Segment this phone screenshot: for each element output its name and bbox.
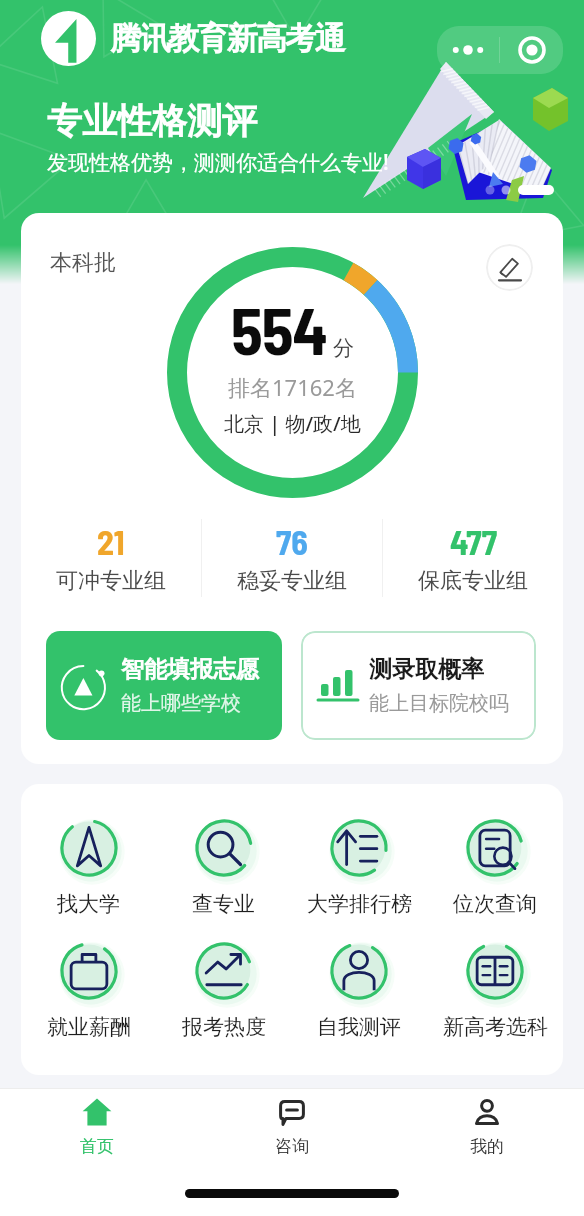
button[interactable]: 查专业 [156,815,291,917]
button[interactable]: 咨询 [194,1089,389,1175]
staticText: 腾讯教育新高考通 [110,19,344,58]
staticText: 测录取概率 [369,655,484,684]
staticText: 稳妥专业组 [237,567,347,595]
staticText: 就业薪酬 [47,1014,131,1040]
button[interactable]: 智能填报志愿 [46,631,282,740]
staticText: 76 [276,521,308,562]
button[interactable]: 就业薪酬 [21,938,156,1040]
button[interactable]: Close [500,26,563,74]
button[interactable]: 自我测评 [291,938,427,1040]
staticText: 保底专业组 [418,567,528,595]
staticText: 我的 [470,1136,504,1157]
button[interactable]: 找大学 [21,815,156,917]
staticText: 查专业 [192,891,255,917]
staticText: 能上目标院校吗 [369,691,509,716]
staticText: 位次查询 [453,891,537,917]
staticText: 自我测评 [317,1014,401,1040]
staticText: 新高考选科 [443,1014,548,1040]
staticText: 分 [333,335,354,361]
staticText: 找大学 [57,891,120,917]
staticText: 首页 [80,1136,114,1157]
button[interactable]: 大学排行榜 [291,815,427,917]
staticText: 报考热度 [182,1014,266,1040]
staticText: 554 [231,290,327,368]
staticText: 477 [450,521,497,562]
button[interactable]: 我的 [389,1089,584,1175]
staticText: 北京 | 物/政/地 [224,410,361,437]
button[interactable]: 76 [202,519,382,597]
button[interactable]: More [437,26,499,74]
staticText: 咨询 [275,1136,309,1157]
staticText: 可冲专业组 [56,567,166,595]
button[interactable]: 位次查询 [427,815,563,917]
button[interactable]: 新高考选科 [427,938,563,1040]
staticText: 21 [97,521,125,562]
staticText: 能上哪些学校 [121,691,241,716]
button[interactable]: 477 [383,519,563,597]
button[interactable]: 测录取概率 [301,631,536,740]
button[interactable]: 报考热度 [156,938,291,1040]
staticText: 本科批 [50,249,116,277]
button[interactable]: 21 [21,519,201,597]
button[interactable]: Edit [486,244,533,291]
staticText: 排名17162名 [228,372,357,402]
staticText: 专业性格测评 [47,99,257,143]
button[interactable]: 首页 [0,1089,194,1175]
staticText: 发现性格优势，测测你适合什么专业! [47,148,389,177]
staticText: 大学排行榜 [307,891,412,917]
staticText: 智能填报志愿 [121,655,259,684]
